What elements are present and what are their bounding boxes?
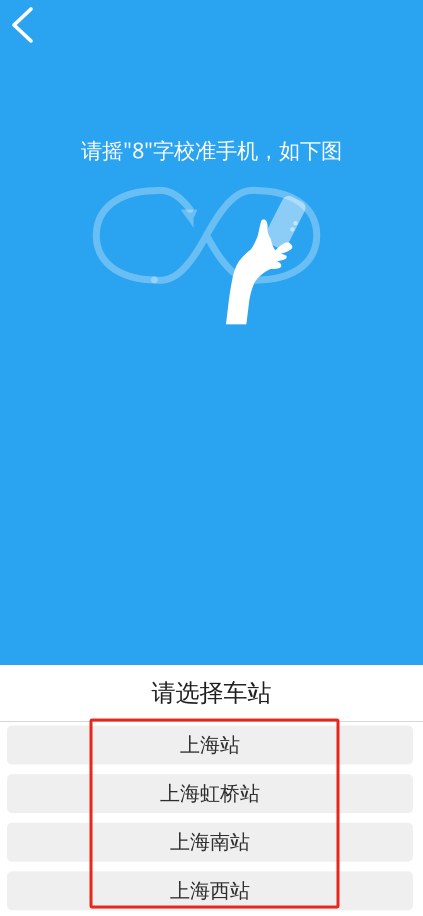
staticText: 请选择车站 xyxy=(151,678,271,708)
staticText: 上海站 xyxy=(180,733,240,757)
button[interactable]: Back xyxy=(0,0,62,58)
button[interactable]: 上海南站 xyxy=(7,823,413,862)
button[interactable]: 上海站 xyxy=(7,725,413,764)
staticText: 上海南站 xyxy=(170,830,250,854)
button[interactable]: 上海西站 xyxy=(7,871,413,910)
staticText: 上海虹桥站 xyxy=(160,781,260,806)
staticText: 请摇"8"字校准手机，如下图 xyxy=(81,136,342,164)
button[interactable]: 上海虹桥站 xyxy=(7,774,413,813)
staticText: 上海西站 xyxy=(170,878,250,903)
